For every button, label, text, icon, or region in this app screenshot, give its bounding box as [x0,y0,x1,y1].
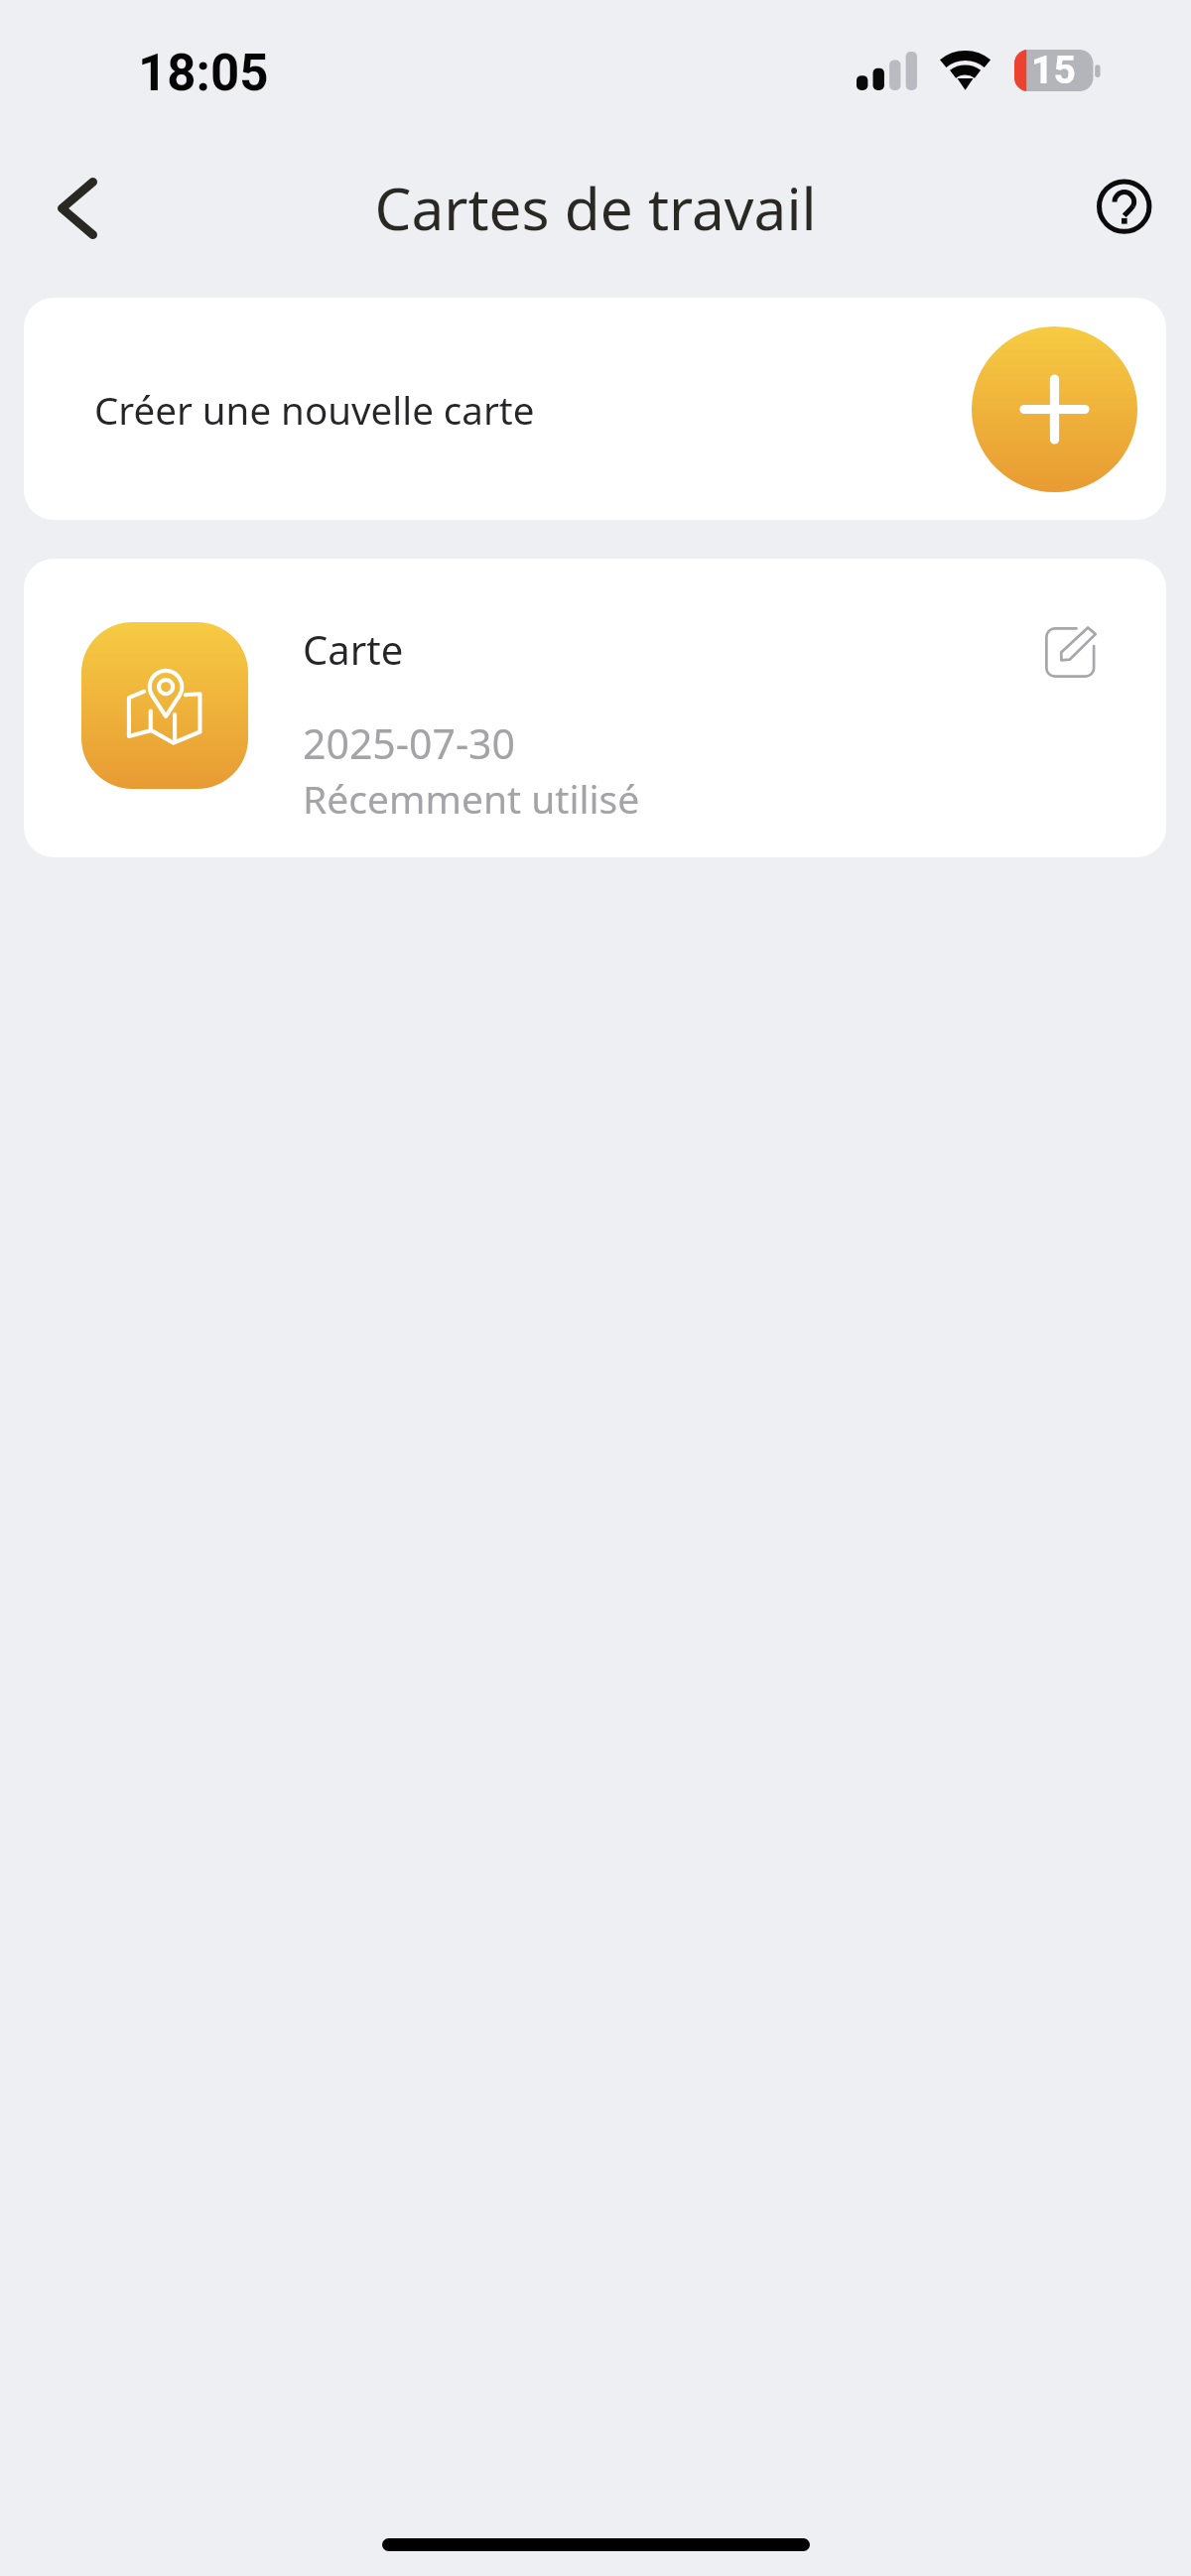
button[interactable]: Créer une nouvelle carte [24,298,1166,520]
staticText: 18:05 [138,44,269,103]
staticText: 2025-07-30 [303,715,516,771]
button[interactable]: Retour [36,167,119,250]
staticText: Carte [303,622,404,676]
staticText: Cartes de travail [374,168,817,247]
staticText: Créer une nouvelle carte [94,384,535,436]
button[interactable]: Modifier [1029,611,1111,693]
button[interactable]: Ajouter une carte [972,326,1137,492]
button[interactable]: Aide [1083,165,1166,248]
button[interactable]: Carte [24,559,1166,857]
staticText: 15 [1031,48,1076,93]
staticText: Récemment utilisé [303,772,640,825]
